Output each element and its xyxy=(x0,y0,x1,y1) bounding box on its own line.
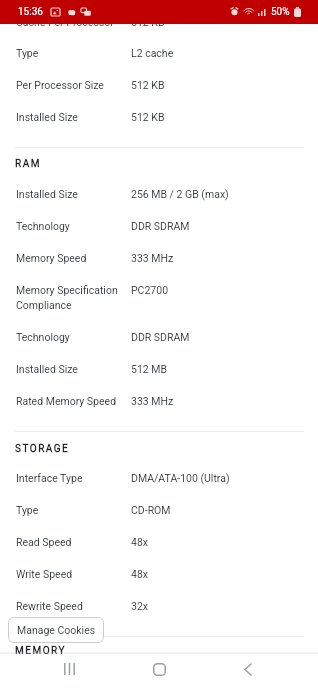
button[interactable]: Type xyxy=(0,47,318,63)
button[interactable]: Memory Speed xyxy=(0,252,318,268)
staticText: MEMORY xyxy=(15,645,66,657)
staticText: Type xyxy=(16,504,128,516)
button[interactable]: Rewrite Speed xyxy=(0,600,318,616)
staticText: STORAGE xyxy=(15,443,70,455)
button[interactable]: Installed Size xyxy=(0,188,318,204)
staticText: DMA/ATA-100 (Ultra) xyxy=(131,472,230,484)
staticText: Cache Per Processor xyxy=(16,16,128,28)
staticText: Installed Size xyxy=(16,363,128,375)
staticText: 512 KB xyxy=(131,111,165,123)
button[interactable]: Installed Size xyxy=(0,111,318,127)
staticText: Memory Specification Compliance xyxy=(16,284,131,311)
staticText: DDR SDRAM xyxy=(131,220,190,232)
staticText: Installed Size xyxy=(16,111,128,123)
button[interactable]: Interface Type xyxy=(0,472,318,488)
staticText: L2 cache xyxy=(131,47,174,59)
staticText: Type xyxy=(16,47,128,59)
staticText: Memory Speed xyxy=(16,252,128,264)
staticText: CD-ROM xyxy=(131,504,171,516)
staticText: Rated Memory Speed xyxy=(16,395,128,407)
staticText: 50% xyxy=(271,6,290,18)
button[interactable]: Write Speed xyxy=(0,568,318,584)
staticText: DDR SDRAM xyxy=(131,331,190,343)
button[interactable]: Per Processor Size xyxy=(0,79,318,95)
staticText: 512 MB xyxy=(131,363,168,375)
button[interactable]: Installed Size xyxy=(0,363,318,379)
staticText: Technology xyxy=(16,220,128,232)
staticText: Read Speed xyxy=(16,536,128,548)
staticText: 512 KB xyxy=(131,79,165,91)
staticText: 15:36 xyxy=(18,6,43,18)
staticText: Rewrite Speed xyxy=(16,600,128,612)
staticText: Write Speed xyxy=(16,568,128,580)
staticText: Per Processor Size xyxy=(16,79,128,91)
button[interactable]: Cache Per Processor xyxy=(0,16,318,32)
staticText: PC2700 xyxy=(131,284,169,296)
button[interactable]: Rated Memory Speed xyxy=(0,395,318,411)
button[interactable]: Technology xyxy=(0,220,318,236)
staticText: 32x xyxy=(131,600,149,612)
staticText: Installed Size xyxy=(16,188,128,200)
staticText: 333 MHz xyxy=(131,395,174,407)
staticText: Technology xyxy=(16,331,128,343)
staticText: Interface Type xyxy=(16,472,128,484)
button[interactable]: Home xyxy=(139,651,179,687)
button[interactable]: Manage Cookies xyxy=(8,617,104,643)
button[interactable]: Read Speed xyxy=(0,536,318,552)
button[interactable]: Technology xyxy=(0,331,318,347)
staticText: 512 KB xyxy=(131,16,165,28)
button[interactable]: Back xyxy=(228,651,268,687)
button[interactable]: Type xyxy=(0,504,318,520)
staticText: 48x xyxy=(131,568,149,580)
staticText: RAM xyxy=(15,158,41,170)
button[interactable]: Memory Specification Compliance xyxy=(0,284,318,315)
button[interactable]: Recent apps xyxy=(49,651,89,687)
staticText: 333 MHz xyxy=(131,252,174,264)
staticText: 48x xyxy=(131,536,149,548)
staticText: Manage Cookies xyxy=(17,624,96,636)
staticText: 256 MB / 2 GB (max) xyxy=(131,188,229,200)
